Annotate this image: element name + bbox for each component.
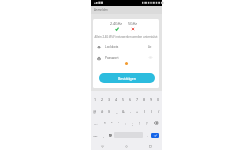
button[interactable]: 3	[106, 93, 113, 105]
button[interactable]: +	[134, 105, 141, 117]
button[interactable]: 6	[127, 93, 134, 105]
staticText: -	[130, 109, 132, 114]
staticText: 4	[115, 97, 118, 102]
button[interactable]: Enter	[151, 133, 159, 138]
button[interactable]: @	[91, 105, 99, 117]
staticText: 6	[129, 97, 132, 102]
staticText: 3	[108, 97, 111, 102]
button[interactable]: $	[106, 105, 113, 117]
button[interactable]: !	[136, 117, 143, 129]
staticText: =\<	[94, 122, 98, 125]
staticText: )	[151, 109, 153, 114]
staticText: ,	[103, 133, 104, 138]
button[interactable]: _	[113, 105, 120, 117]
button[interactable]: ?	[143, 117, 150, 129]
button[interactable]: #	[99, 105, 106, 117]
staticText: 0	[157, 97, 160, 102]
button[interactable]: 1	[91, 93, 99, 105]
button[interactable]: "	[108, 117, 115, 129]
staticText: :	[125, 121, 126, 126]
button[interactable]: *	[101, 117, 108, 129]
staticText: 1	[94, 97, 97, 102]
staticText: .	[147, 133, 148, 138]
staticText: $	[108, 109, 111, 114]
button[interactable]: 0	[155, 93, 162, 105]
staticText: 5	[122, 97, 125, 102]
staticText: ;	[132, 121, 133, 126]
button[interactable]: -	[127, 105, 134, 117]
staticText: 9	[150, 97, 153, 102]
staticText: #	[101, 109, 104, 114]
button[interactable]: )	[148, 105, 155, 117]
button[interactable]: Passwort	[93, 52, 159, 63]
button[interactable]: ,	[100, 129, 107, 141]
button[interactable]: 5	[120, 93, 127, 105]
button[interactable]: /	[155, 105, 162, 117]
staticText: /	[158, 109, 160, 114]
button[interactable]: '	[115, 117, 122, 129]
button[interactable]: 4	[113, 93, 120, 105]
staticText: @	[93, 109, 97, 114]
button[interactable]: 9	[148, 93, 155, 105]
button[interactable]: Lockbots	[93, 41, 159, 52]
button[interactable]: Bestätigen	[99, 73, 155, 83]
button[interactable]: :	[122, 117, 129, 129]
staticText: Lockbots	[105, 45, 119, 49]
staticText: Ae	[148, 45, 152, 49]
staticText: 8	[143, 97, 146, 102]
button[interactable]: =\<	[91, 117, 101, 129]
button[interactable]: &	[120, 105, 127, 117]
button[interactable]: 8	[141, 93, 148, 105]
staticText: Passwort	[105, 56, 119, 60]
staticText: '	[118, 121, 119, 126]
staticText: &	[122, 109, 125, 114]
staticText: Anmelden	[94, 8, 108, 12]
button[interactable]: ;	[129, 117, 136, 129]
button[interactable]: Backspace	[150, 117, 162, 129]
staticText: ABC	[93, 134, 98, 137]
button[interactable]: Recents	[138, 143, 162, 150]
staticText: 2.4GHz	[110, 21, 123, 26]
staticText: *	[104, 121, 106, 126]
staticText: _	[116, 109, 118, 114]
staticText: 7	[136, 97, 139, 102]
button[interactable]: (	[141, 105, 148, 117]
button[interactable]: 7	[134, 93, 141, 105]
staticText: 5GHz	[128, 21, 138, 26]
button[interactable]: Emoji	[107, 129, 114, 141]
staticText: "	[111, 121, 113, 126]
staticText: Allein 2.4G Wi-Fi netzwerken werden unte…	[93, 35, 159, 39]
button[interactable]: ABC	[91, 129, 100, 141]
staticText: (	[144, 109, 146, 114]
staticText: !	[139, 121, 140, 126]
staticText: Bestätigen	[118, 76, 137, 81]
staticText: ?	[146, 121, 148, 126]
button[interactable]: Back	[91, 143, 114, 150]
staticText: +	[136, 109, 139, 114]
button[interactable]: 2	[99, 93, 106, 105]
button[interactable]: Home	[114, 143, 138, 150]
staticText: 2	[101, 97, 104, 102]
